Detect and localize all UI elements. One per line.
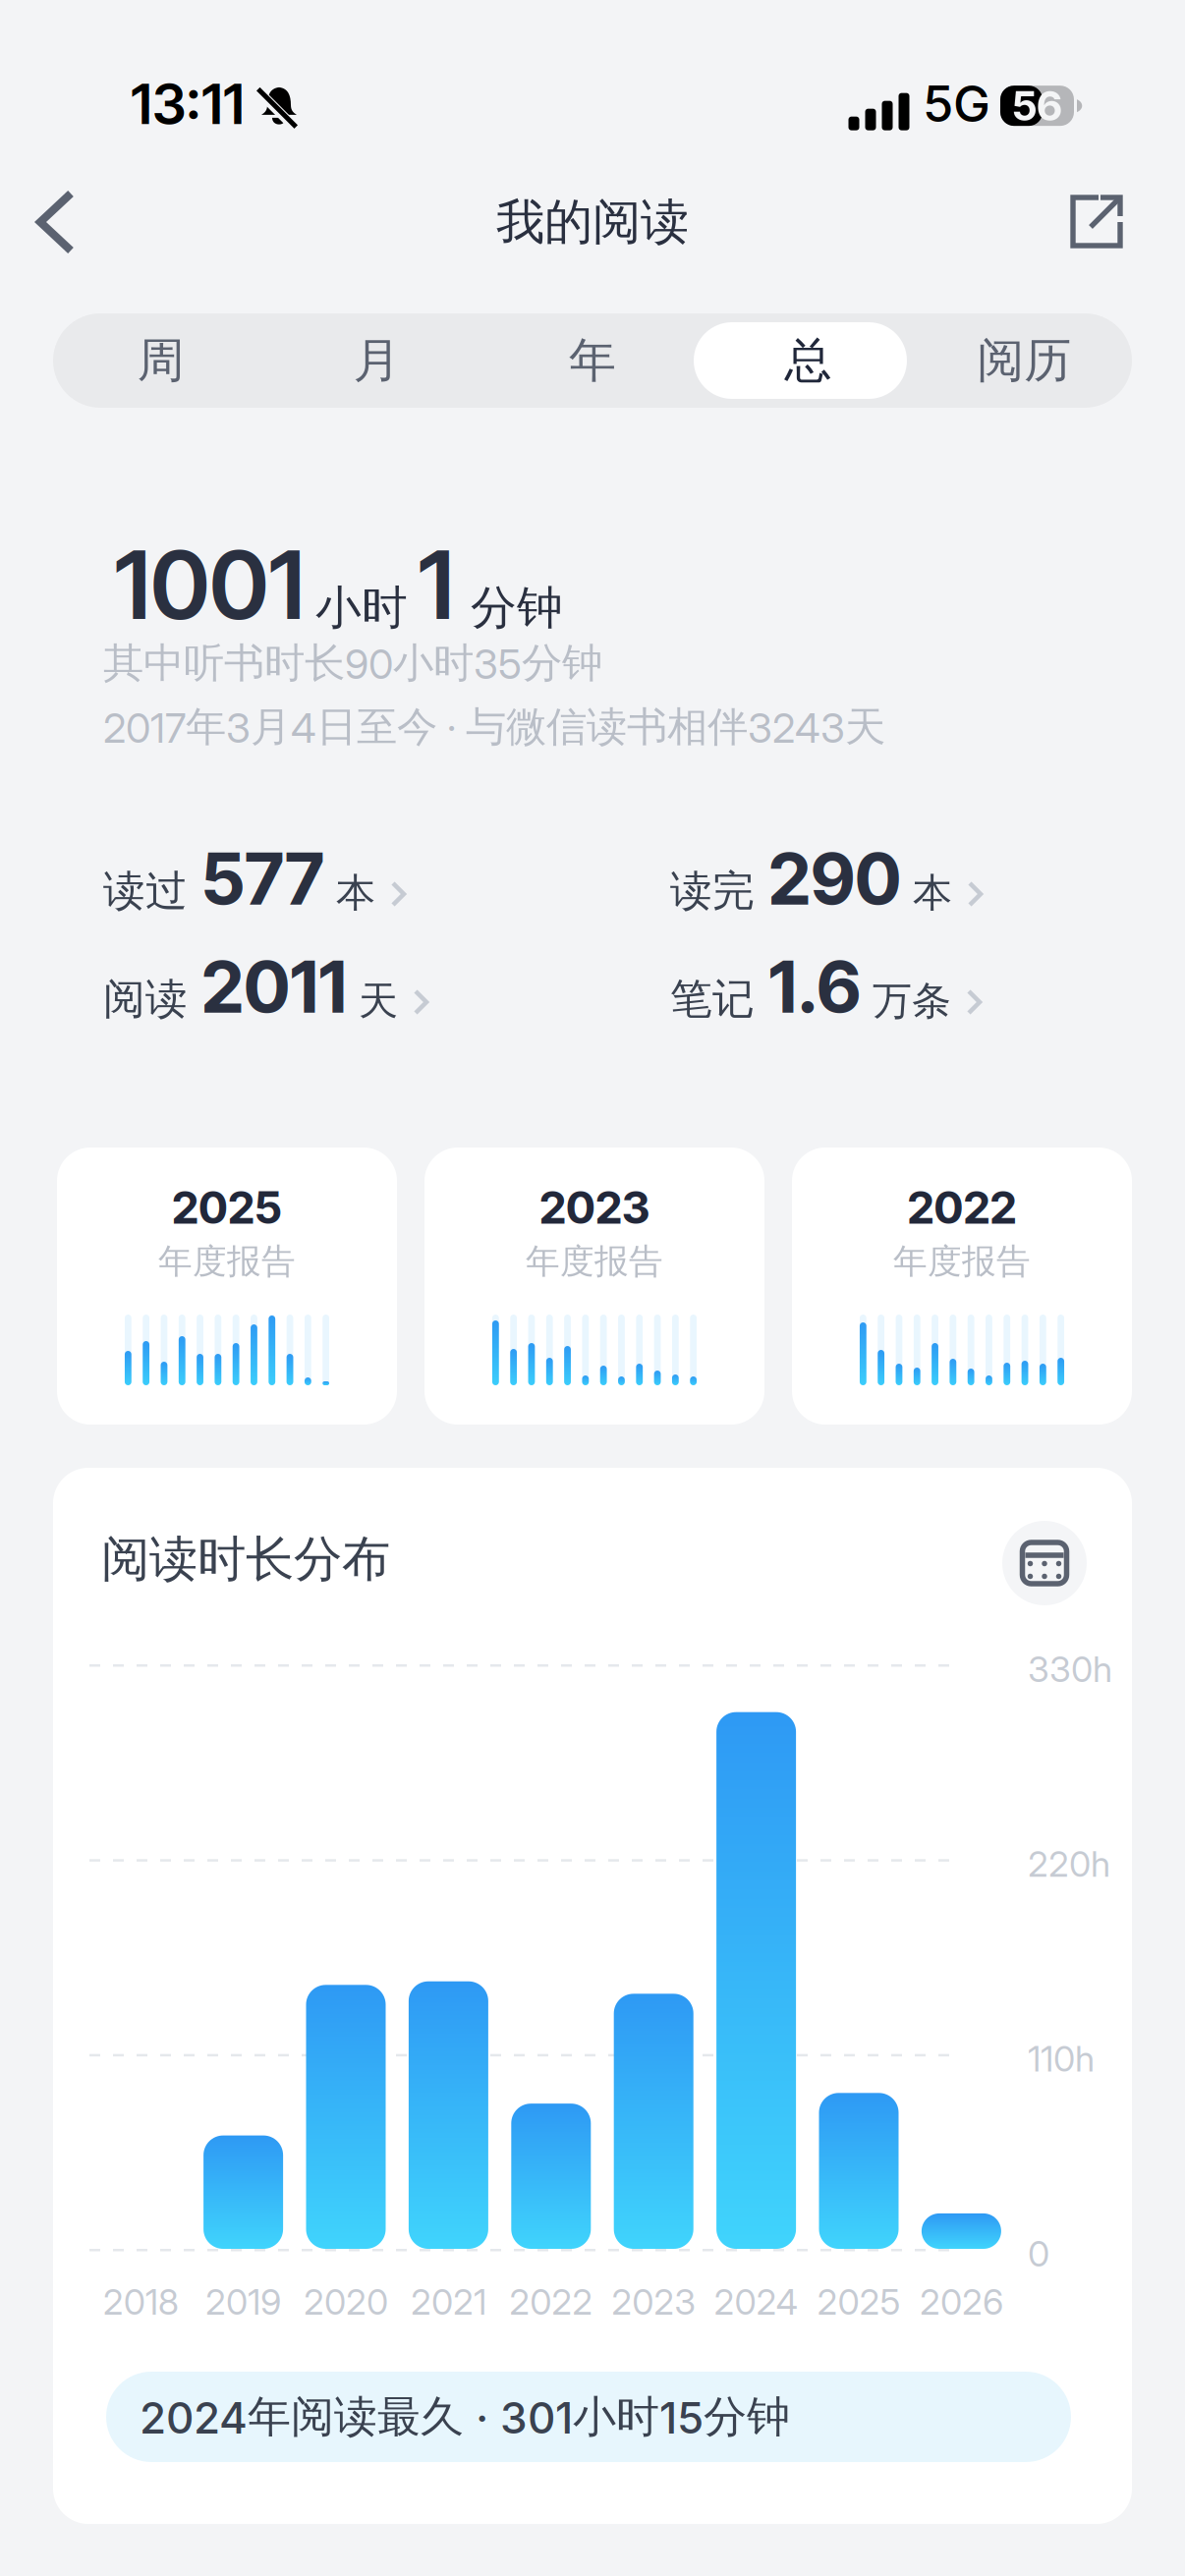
staticText: 2011 <box>188 944 347 1030</box>
button[interactable]: 年 <box>485 313 700 408</box>
staticText: 月 <box>353 331 400 390</box>
staticText: 1.6 <box>755 944 861 1030</box>
staticText: 2025 <box>817 2280 901 2323</box>
staticText: 我的阅读 <box>496 191 689 252</box>
staticText: 2024 <box>714 2280 798 2323</box>
staticText: 年度报告 <box>893 1240 1031 1283</box>
staticText: 2023 <box>539 1181 649 1234</box>
staticText: 年 <box>569 331 616 390</box>
staticText: 5G <box>923 74 990 134</box>
staticText: 万条 <box>861 976 951 1026</box>
button[interactable]: 总 <box>700 313 916 408</box>
staticText: 小时 <box>315 579 408 637</box>
staticText: 110h <box>1028 2037 1095 2080</box>
staticText: 年度报告 <box>158 1240 296 1283</box>
staticText: 220h <box>1028 1842 1110 1885</box>
button[interactable]: 阅读 <box>103 965 565 1030</box>
staticText: 读过 <box>103 865 188 918</box>
staticText: 其中听书时长90小时35分钟 <box>103 638 602 689</box>
staticText: 阅历 <box>977 331 1071 390</box>
button[interactable]: 读完 <box>670 857 1132 922</box>
button[interactable]: 2023 <box>424 1148 764 1425</box>
staticText: 2017年3月4日至今 · 与微信读书相伴3243天 <box>103 701 885 753</box>
button[interactable]: 读过 <box>103 857 565 922</box>
staticText: 笔记 <box>670 973 755 1026</box>
staticText: 577 <box>188 836 324 922</box>
staticText: 2023 <box>611 2280 696 2323</box>
staticText: 0 <box>1028 2232 1049 2275</box>
staticText: 290 <box>755 836 901 922</box>
button[interactable]: 月 <box>269 313 485 408</box>
staticText: 2025 <box>172 1181 282 1234</box>
staticText: 读完 <box>670 865 755 918</box>
staticText: 2022 <box>907 1181 1016 1234</box>
button[interactable]: Back <box>0 163 118 281</box>
staticText: 2026 <box>920 2280 1003 2323</box>
button[interactable]: 笔记 <box>670 965 1132 1030</box>
staticText: 总 <box>785 331 832 390</box>
staticText: 2021 <box>411 2280 486 2323</box>
staticText: 330h <box>1028 1648 1112 1690</box>
staticText: 2024年阅读最久 · 301小时15分钟 <box>140 2390 790 2444</box>
staticText: 1001 <box>114 528 305 642</box>
staticText: 本 <box>324 868 375 918</box>
staticText: 阅读时长分布 <box>101 1529 390 1590</box>
staticText: 阅读 <box>103 973 188 1026</box>
staticText: 1 <box>418 528 454 642</box>
staticText: 2020 <box>304 2280 388 2323</box>
staticText: 13:11 <box>131 71 245 137</box>
staticText: 本 <box>901 868 952 918</box>
button[interactable]: Calendar <box>1002 1521 1087 1605</box>
staticText: 周 <box>137 331 185 390</box>
staticText: 2022 <box>509 2280 593 2323</box>
staticText: 56 <box>1012 81 1062 130</box>
button[interactable]: 周 <box>53 313 269 408</box>
staticText: 分钟 <box>471 579 563 637</box>
staticText: 2019 <box>205 2280 281 2323</box>
button[interactable]: 2022 <box>792 1148 1132 1425</box>
staticText: 2018 <box>103 2280 179 2323</box>
button[interactable]: 阅历 <box>916 313 1132 408</box>
staticText: 年度报告 <box>526 1240 663 1283</box>
staticText: 天 <box>347 976 398 1026</box>
button[interactable]: 2025 <box>57 1148 397 1425</box>
button[interactable]: Share <box>1043 167 1151 276</box>
